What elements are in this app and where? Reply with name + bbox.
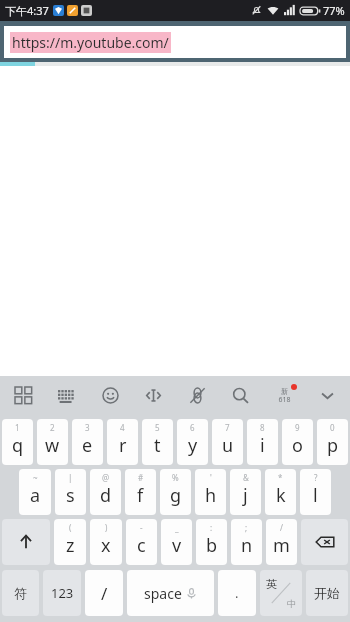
staticText: - xyxy=(140,522,143,533)
staticText: . xyxy=(235,584,239,602)
staticText: k xyxy=(276,483,286,508)
button[interactable]: Emoji xyxy=(97,382,123,408)
staticText: 7 xyxy=(225,422,230,433)
staticText: : xyxy=(210,522,213,533)
staticText: x xyxy=(101,533,111,558)
button[interactable]: # xyxy=(125,469,156,515)
button[interactable]: ( xyxy=(54,519,86,565)
staticText: z xyxy=(66,533,75,558)
staticText: * xyxy=(278,472,283,483)
staticText: t xyxy=(154,433,161,458)
staticText: ~ xyxy=(33,472,38,483)
staticText: l xyxy=(313,483,318,508)
staticText: ' xyxy=(210,472,212,483)
button[interactable]: Search xyxy=(227,382,253,408)
button[interactable]: : xyxy=(196,519,227,565)
button[interactable]: Keyboard xyxy=(53,382,79,408)
button[interactable]: / xyxy=(266,519,297,565)
staticText: m xyxy=(273,533,290,558)
button[interactable]: Promotion xyxy=(271,382,297,408)
staticText: v xyxy=(172,533,182,558)
staticText: 开始 xyxy=(314,585,340,601)
staticText: j xyxy=(243,483,248,508)
button[interactable]: 9 xyxy=(282,419,313,465)
button[interactable]: Apps xyxy=(10,382,36,408)
staticText: ; xyxy=(245,522,248,533)
button[interactable]: . xyxy=(218,570,256,616)
button[interactable]: space xyxy=(127,570,214,616)
staticText: 2 xyxy=(50,422,55,433)
staticText: f xyxy=(137,483,144,508)
staticText: o xyxy=(292,433,303,458)
button[interactable]: & xyxy=(230,469,261,515)
staticText: ) xyxy=(105,522,108,533)
button[interactable]: 开始 xyxy=(306,570,348,616)
staticText: s xyxy=(66,483,75,508)
button[interactable]: 0 xyxy=(317,419,348,465)
button[interactable]: Shift xyxy=(2,519,50,565)
button[interactable]: Language switch xyxy=(260,570,302,616)
button[interactable]: ~ xyxy=(19,469,51,515)
staticText: 3 xyxy=(85,422,90,433)
button[interactable]: | xyxy=(55,469,86,515)
staticText: 1 xyxy=(15,422,20,433)
staticText: | xyxy=(68,472,73,483)
button[interactable]: 2 xyxy=(37,419,68,465)
button[interactable]: ? xyxy=(300,469,331,515)
staticText: e xyxy=(82,433,93,458)
staticText: 8 xyxy=(260,422,265,433)
staticText: https://m.youtube.com/ xyxy=(12,33,169,52)
staticText: 5 xyxy=(155,422,160,433)
staticText: # xyxy=(138,472,144,483)
staticText: r xyxy=(119,433,127,458)
staticText: a xyxy=(30,483,41,508)
button[interactable]: - xyxy=(126,519,157,565)
staticText: 123 xyxy=(51,584,74,602)
staticText: h xyxy=(205,483,217,508)
staticText: space xyxy=(144,584,182,603)
button[interactable]: Backspace xyxy=(301,519,348,565)
button[interactable]: Collapse xyxy=(314,382,340,408)
staticText: 0 xyxy=(330,422,335,433)
button[interactable]: 符 xyxy=(2,570,39,616)
button[interactable]: 1 xyxy=(2,419,33,465)
button[interactable]: @ xyxy=(90,469,121,515)
staticText: w xyxy=(45,433,60,458)
button[interactable]: 6 xyxy=(177,419,208,465)
staticText: 下午4:37 xyxy=(5,3,49,18)
button[interactable]: 3 xyxy=(72,419,103,465)
staticText: b xyxy=(206,533,218,558)
staticText: @ xyxy=(102,472,110,483)
button[interactable]: 7 xyxy=(212,419,243,465)
staticText: & xyxy=(243,472,249,483)
button[interactable]: Clipboard xyxy=(184,382,210,408)
staticText: y xyxy=(188,433,198,458)
staticText: 中 xyxy=(287,598,296,609)
button[interactable]: 4 xyxy=(107,419,138,465)
button[interactable]: ' xyxy=(195,469,226,515)
staticText: % xyxy=(172,472,179,483)
button[interactable]: / xyxy=(85,570,123,616)
staticText: 英 xyxy=(266,577,277,591)
button[interactable]: _ xyxy=(161,519,192,565)
staticText: d xyxy=(100,483,112,508)
button[interactable]: 8 xyxy=(247,419,278,465)
staticText: 新 618 xyxy=(278,387,291,404)
staticText: q xyxy=(12,433,24,458)
button[interactable]: ; xyxy=(231,519,262,565)
button[interactable]: * xyxy=(265,469,296,515)
staticText: u xyxy=(222,433,234,458)
button[interactable]: Cursor xyxy=(140,382,166,408)
staticText: n xyxy=(241,533,253,558)
staticText: c xyxy=(137,533,146,558)
button[interactable]: https://m.youtube.com/ xyxy=(4,26,346,58)
staticText: 6 xyxy=(190,422,195,433)
staticText: / xyxy=(280,522,283,533)
button[interactable]: % xyxy=(160,469,191,515)
button[interactable]: 5 xyxy=(142,419,173,465)
button[interactable]: 123 xyxy=(43,570,81,616)
staticText: g xyxy=(170,483,182,508)
button[interactable]: ) xyxy=(90,519,122,565)
staticText: ? xyxy=(314,472,318,483)
staticText: 符 xyxy=(14,585,27,601)
